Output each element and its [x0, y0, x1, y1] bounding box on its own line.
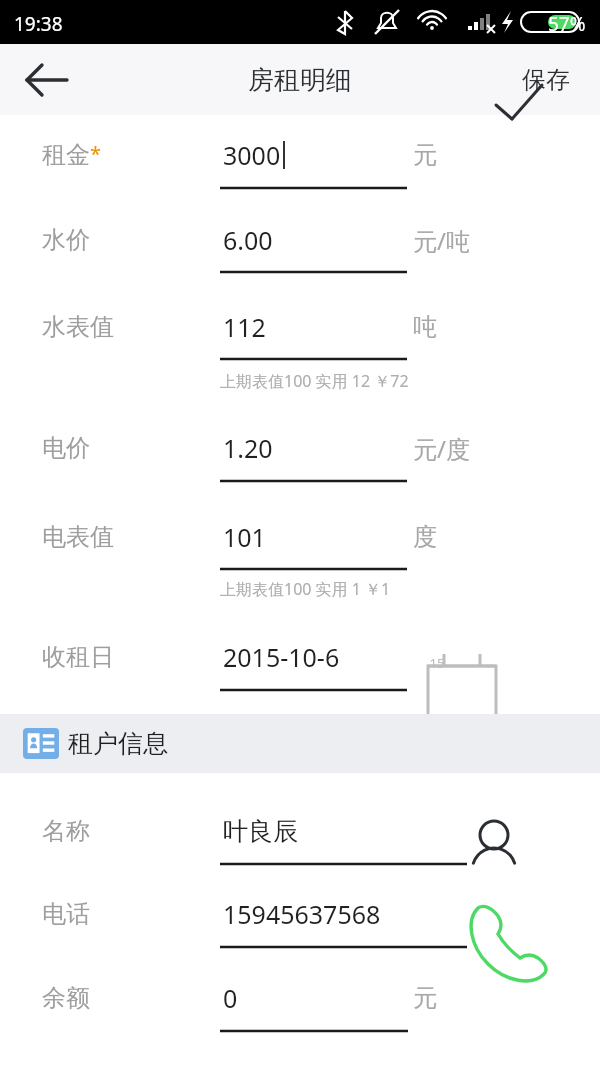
button[interactable]: Pick contact: [452, 808, 500, 856]
staticText: 元: [413, 983, 437, 1013]
staticText: 112: [223, 310, 266, 344]
staticText: 租金: [42, 140, 90, 170]
staticText: 租户信息: [68, 728, 168, 759]
button[interactable]: 租户信息: [0, 714, 600, 773]
staticText: 0: [223, 981, 238, 1015]
staticText: 水表值: [42, 312, 114, 342]
staticText: 上期表值100 实用 1 ￥1: [220, 578, 391, 600]
button[interactable]: Call: [452, 890, 500, 938]
staticText: 名称: [42, 816, 90, 846]
staticText: 1.20: [223, 431, 273, 465]
staticText: 元/度: [413, 432, 470, 465]
staticText: 2015-10-6: [223, 640, 340, 674]
button[interactable]: Back: [8, 52, 64, 108]
staticText: *: [90, 140, 102, 167]
button[interactable]: 电表值: [0, 508, 600, 566]
staticText: 保存: [522, 65, 570, 95]
staticText: 余额: [42, 983, 90, 1013]
button[interactable]: 电价: [0, 419, 600, 477]
staticText: 电话: [42, 899, 90, 929]
button[interactable]: 租金: [0, 126, 600, 184]
staticText: 15945637568: [223, 897, 381, 931]
staticText: 15: [425, 654, 449, 672]
button[interactable]: Pick date: [412, 632, 460, 680]
button[interactable]: 收租日: [0, 628, 600, 686]
staticText: 3000: [223, 138, 281, 172]
staticText: 101: [223, 520, 266, 554]
button[interactable]: 水价: [0, 211, 600, 269]
staticText: 叶良辰: [223, 816, 298, 847]
staticText: 电价: [42, 433, 90, 463]
button[interactable]: 保存: [490, 58, 590, 102]
staticText: 水价: [42, 225, 90, 255]
staticText: 收租日: [42, 642, 114, 672]
button[interactable]: 余额: [0, 969, 600, 1027]
button[interactable]: 水表值: [0, 298, 600, 356]
staticText: 房租明细: [0, 64, 600, 97]
staticText: 元: [413, 140, 437, 170]
staticText: 元/吨: [413, 224, 470, 257]
staticText: 吨: [413, 312, 437, 342]
button[interactable]: 名称: [0, 802, 600, 860]
staticText: 19:38: [14, 11, 63, 37]
staticText: 电表值: [42, 522, 114, 552]
staticText: 上期表值100 实用 12 ￥72: [220, 370, 409, 392]
staticText: 度: [413, 522, 437, 552]
staticText: 6.00: [223, 223, 273, 257]
staticText: 57%: [548, 11, 598, 37]
button[interactable]: 电话: [0, 885, 600, 943]
